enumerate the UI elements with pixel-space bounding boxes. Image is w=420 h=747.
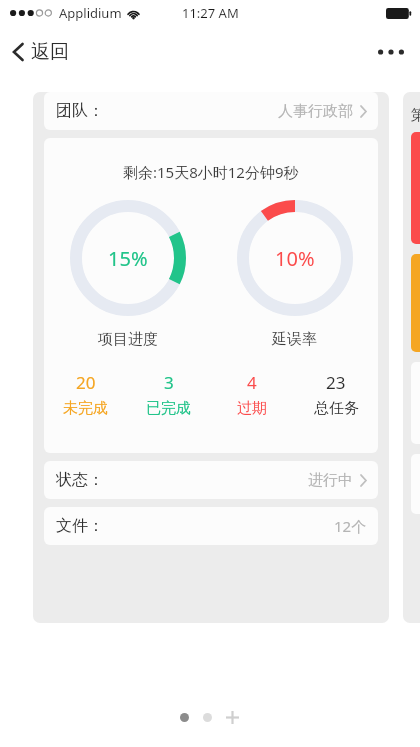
staticText: 文件：	[56, 516, 104, 536]
button[interactable]: 返回	[0, 32, 83, 72]
button[interactable]: 23	[294, 371, 378, 418]
staticText: 12个	[334, 516, 367, 536]
staticText: 已完成	[146, 399, 191, 418]
staticText: 2016年年会筹备	[46, 106, 163, 128]
staticText: 11:27 AM	[182, 4, 239, 22]
staticText: 未完成	[63, 399, 108, 418]
staticText: 团队：	[56, 101, 104, 121]
staticText: 20	[76, 371, 96, 394]
button[interactable]: 20	[44, 371, 127, 418]
staticText: 状态：	[56, 470, 104, 490]
button[interactable]: Add	[224, 709, 240, 725]
staticText: 3	[164, 371, 174, 394]
button[interactable]: 3	[127, 371, 210, 418]
button[interactable]: More options	[362, 37, 420, 67]
button[interactable]: 4	[210, 371, 294, 418]
staticText: 延误率	[272, 330, 317, 349]
button[interactable]: 第二	[403, 92, 420, 623]
button[interactable]: 文件：	[44, 507, 378, 545]
staticText: 进行中	[308, 471, 353, 490]
staticText: 人事行政部	[278, 102, 353, 121]
button[interactable]: 团队：	[44, 92, 378, 130]
staticText: 剩余:15天8小时12分钟9秒	[123, 162, 299, 182]
staticText: Applidium	[59, 4, 122, 22]
staticText: 第二	[411, 106, 420, 125]
button[interactable]: 状态：	[44, 461, 378, 499]
staticText: 过期	[237, 399, 267, 418]
button[interactable]	[180, 713, 189, 722]
button[interactable]	[203, 713, 212, 722]
staticText: 总任务	[314, 399, 359, 418]
staticText: 4	[247, 371, 257, 394]
staticText: 15%	[108, 245, 148, 272]
staticText: 项目进度	[98, 330, 158, 349]
button[interactable]: Collapse	[351, 102, 381, 132]
staticText: 23	[326, 371, 346, 394]
staticText: 10%	[275, 245, 315, 272]
staticText: 返回	[31, 40, 69, 64]
